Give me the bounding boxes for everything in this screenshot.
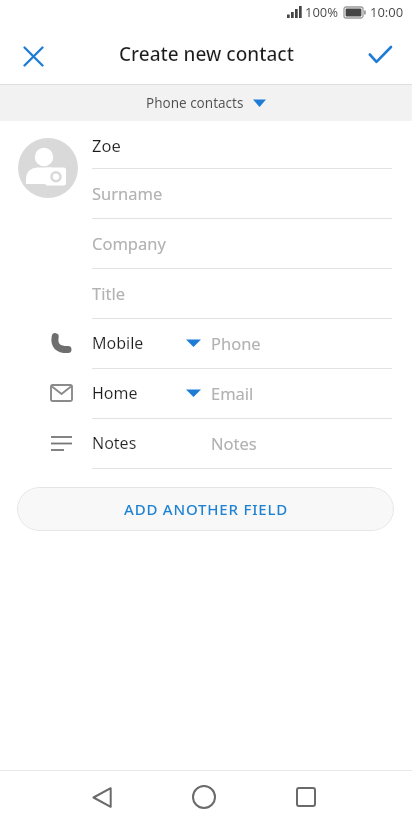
button[interactable]: Notes (211, 418, 392, 468)
staticText: Title (92, 282, 125, 304)
button[interactable]: ADD ANOTHER FIELD (17, 487, 394, 531)
staticText: Notes (92, 432, 137, 454)
staticText: Create new contact (119, 41, 294, 67)
staticText: 100% (305, 3, 339, 21)
button[interactable]: Email (211, 368, 392, 418)
button[interactable] (180, 773, 228, 821)
button[interactable]: Company (92, 218, 392, 268)
button[interactable]: Phone (211, 318, 392, 368)
button[interactable] (359, 33, 401, 75)
button[interactable]: Home (92, 368, 207, 418)
staticText: Home (92, 382, 138, 404)
staticText: Phone contacts (146, 94, 244, 112)
button[interactable]: Mobile (92, 318, 207, 368)
staticText: Surname (92, 182, 163, 204)
button[interactable] (13, 36, 53, 76)
button[interactable] (18, 138, 78, 198)
button[interactable] (282, 773, 330, 821)
button[interactable]: Phone contacts (146, 94, 266, 112)
button[interactable] (78, 773, 126, 821)
button[interactable]: Zoe (92, 121, 392, 168)
staticText: Email (211, 382, 254, 404)
staticText: Notes (211, 432, 257, 454)
staticText: Mobile (92, 332, 144, 354)
button[interactable]: Surname (92, 168, 392, 218)
button[interactable]: Title (92, 268, 392, 318)
staticText: Zoe (92, 134, 121, 156)
staticText: ADD ANOTHER FIELD (124, 499, 288, 519)
staticText: 10:00 (370, 3, 404, 21)
staticText: Phone (211, 332, 261, 354)
staticText: Company (92, 232, 166, 254)
